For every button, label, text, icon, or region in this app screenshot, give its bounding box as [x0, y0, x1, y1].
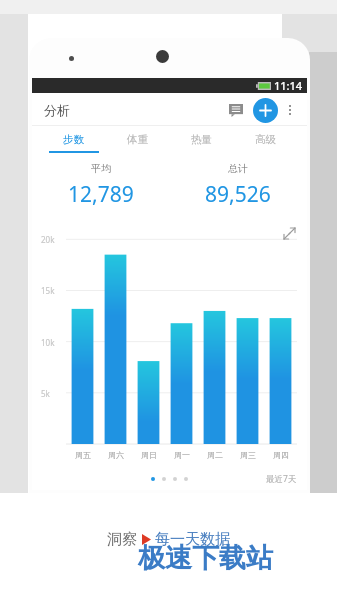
staticText: 11:14 — [274, 78, 303, 93]
staticText: 体重 — [127, 133, 148, 146]
button[interactable]: Page 3 — [173, 477, 177, 481]
staticText: 周六 — [108, 450, 124, 460]
button[interactable]: 高级 — [233, 126, 297, 153]
staticText: 12,789 — [68, 180, 134, 209]
staticText: 热量 — [191, 133, 212, 146]
staticText: 高级 — [255, 133, 276, 146]
staticText: 极速下载站 — [138, 541, 273, 575]
staticText: 15k — [41, 285, 55, 296]
staticText: 分析 — [44, 102, 70, 118]
staticText: 总计 — [228, 162, 248, 175]
button[interactable]: 总计 — [169, 153, 307, 217]
button[interactable]: 平均 — [32, 153, 169, 217]
staticText: 周二 — [207, 450, 223, 460]
button[interactable]: More options — [279, 99, 301, 121]
button[interactable]: Page 1 — [151, 477, 155, 481]
staticText: 洞察 — [107, 530, 137, 549]
button[interactable]: Page 4 — [184, 477, 188, 481]
staticText: 最近7天 — [266, 473, 297, 485]
button[interactable]: 步数 — [42, 126, 105, 153]
staticText: 20k — [41, 234, 55, 245]
button[interactable]: Add — [253, 98, 278, 123]
staticText: 周四 — [273, 450, 289, 460]
staticText: 5k — [41, 388, 50, 399]
staticText: 步数 — [63, 133, 84, 146]
button[interactable]: Notes — [223, 97, 249, 123]
button[interactable]: 体重 — [105, 126, 169, 153]
staticText: 周五 — [75, 450, 91, 460]
staticText: 平均 — [91, 162, 111, 175]
staticText: 10k — [41, 337, 55, 348]
staticText: 89,526 — [205, 180, 271, 209]
button[interactable]: Page 2 — [162, 477, 166, 481]
staticText: 周一 — [174, 450, 190, 460]
button[interactable]: 热量 — [169, 126, 233, 153]
staticText: 周三 — [240, 450, 256, 460]
staticText: 周日 — [141, 450, 157, 460]
staticText: 每一天数据 — [155, 530, 230, 549]
